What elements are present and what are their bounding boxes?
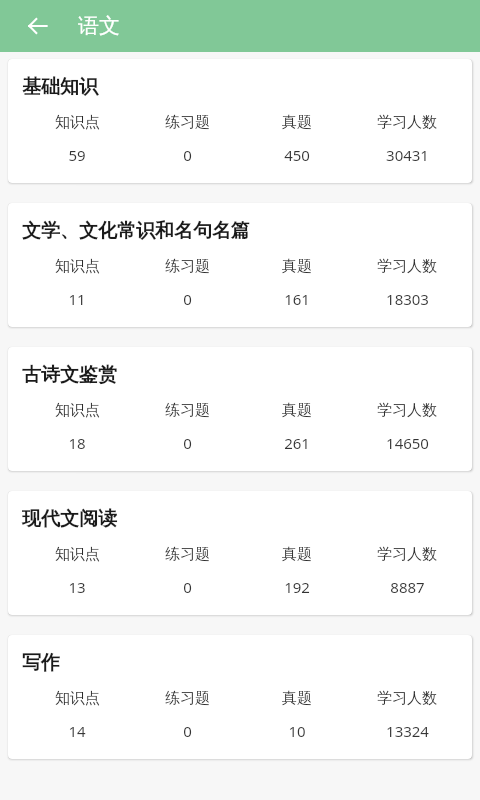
staticText: 18303 — [386, 289, 429, 309]
staticText: 450 — [284, 145, 310, 165]
staticText: 写作 — [22, 651, 60, 675]
button[interactable]: 写作 — [8, 635, 472, 759]
staticText: 真题 — [282, 401, 312, 420]
staticText: 0 — [183, 721, 192, 741]
staticText: 文学、文化常识和名句名篇 — [22, 219, 250, 243]
staticText: 学习人数 — [377, 689, 437, 708]
staticText: 知识点 — [55, 401, 100, 420]
staticText: 学习人数 — [377, 545, 437, 564]
staticText: 14650 — [386, 433, 429, 453]
button[interactable]: 现代文阅读 — [8, 491, 472, 615]
staticText: 10 — [288, 721, 306, 741]
staticText: 0 — [183, 289, 192, 309]
staticText: 13324 — [386, 721, 429, 741]
staticText: 192 — [284, 577, 310, 597]
staticText: 学习人数 — [377, 257, 437, 276]
staticText: 真题 — [282, 113, 312, 132]
staticText: 练习题 — [165, 689, 210, 708]
staticText: 13 — [68, 577, 86, 597]
staticText: 14 — [68, 721, 86, 741]
staticText: 基础知识 — [22, 75, 98, 99]
staticText: 18 — [68, 433, 86, 453]
staticText: 真题 — [282, 689, 312, 708]
staticText: 古诗文鉴赏 — [22, 363, 117, 387]
staticText: 11 — [68, 289, 86, 309]
button[interactable]: 文学、文化常识和名句名篇 — [8, 203, 472, 327]
button[interactable]: 古诗文鉴赏 — [8, 347, 472, 471]
staticText: 0 — [183, 145, 192, 165]
staticText: 知识点 — [55, 545, 100, 564]
staticText: 30431 — [386, 145, 429, 165]
button[interactable]: 基础知识 — [8, 59, 472, 183]
staticText: 练习题 — [165, 257, 210, 276]
staticText: 知识点 — [55, 257, 100, 276]
staticText: 59 — [68, 145, 86, 165]
staticText: 真题 — [282, 257, 312, 276]
staticText: 练习题 — [165, 113, 210, 132]
staticText: 学习人数 — [377, 113, 437, 132]
staticText: 学习人数 — [377, 401, 437, 420]
staticText: 261 — [284, 433, 310, 453]
staticText: 8887 — [390, 577, 425, 597]
staticText: 语文 — [78, 13, 120, 39]
staticText: 真题 — [282, 545, 312, 564]
staticText: 0 — [183, 577, 192, 597]
staticText: 现代文阅读 — [22, 507, 117, 531]
button[interactable]: Back — [16, 4, 60, 48]
staticText: 练习题 — [165, 545, 210, 564]
staticText: 0 — [183, 433, 192, 453]
staticText: 161 — [284, 289, 310, 309]
staticText: 知识点 — [55, 113, 100, 132]
staticText: 知识点 — [55, 689, 100, 708]
staticText: 练习题 — [165, 401, 210, 420]
